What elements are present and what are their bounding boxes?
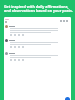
staticText: Get inspired with daily affirmations, an… [4,4,73,13]
button[interactable]: Post action [4,25,71,36]
button[interactable]: Post action [4,52,71,61]
button[interactable]: Post action [4,39,71,48]
button[interactable]: Compose [65,97,70,100]
